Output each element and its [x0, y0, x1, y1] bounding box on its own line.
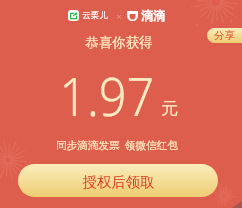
staticText: 云栗儿 — [82, 10, 108, 21]
staticText: × — [116, 10, 122, 22]
staticText: 元 — [161, 98, 178, 119]
button[interactable]: 分享 — [207, 28, 242, 43]
staticText: 分享 — [214, 29, 235, 42]
staticText: 滴滴 — [141, 8, 165, 23]
button[interactable]: 授权后领取 — [18, 164, 218, 197]
staticText: 1.97 — [59, 58, 154, 132]
staticText: 授权后领取 — [82, 173, 155, 191]
staticText: 同步滴滴发票 领微信红包 — [56, 138, 178, 152]
staticText: 恭喜你获得 — [85, 34, 153, 51]
